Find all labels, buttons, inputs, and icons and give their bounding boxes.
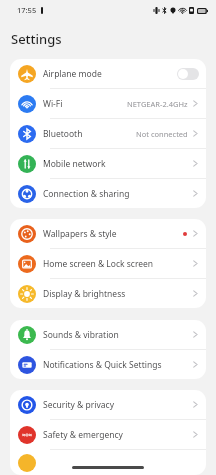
staticText: NETGEAR-2.4GHz — [127, 99, 188, 109]
button[interactable]: Airplane mode — [10, 59, 206, 88]
staticText: Safety & emergency — [43, 429, 123, 441]
staticText: Sounds & vibration — [43, 329, 119, 341]
button[interactable]: Safety & emergency — [10, 420, 206, 449]
staticText: Airplane mode — [43, 68, 102, 80]
staticText: Not connected — [136, 129, 188, 139]
staticText: Bluetooth — [43, 128, 83, 140]
button[interactable]: Sounds & vibration — [10, 320, 206, 349]
button[interactable]: Home screen & Lock screen — [10, 249, 206, 278]
button[interactable]: Wallpapers & style — [10, 219, 206, 248]
staticText: 17:55 — [17, 5, 37, 15]
button[interactable]: Bluetooth — [10, 119, 206, 148]
button[interactable]: Display & brightness — [10, 279, 206, 308]
staticText: Wallpapers & style — [43, 228, 117, 240]
button[interactable]: Mobile network — [10, 149, 206, 178]
button[interactable]: Airplane mode toggle — [177, 68, 199, 80]
button[interactable]: Wi-Fi — [10, 89, 206, 118]
button[interactable]: Connection & sharing — [10, 179, 206, 208]
button[interactable]: Notifications & Quick Settings — [10, 350, 206, 379]
staticText: Security & privacy — [43, 399, 114, 411]
staticText: Notifications & Quick Settings — [43, 359, 162, 371]
staticText: Wi-Fi — [43, 98, 63, 110]
staticText: Connection & sharing — [43, 188, 130, 200]
staticText: Settings — [11, 30, 62, 48]
staticText: Home screen & Lock screen — [43, 258, 154, 270]
staticText: Display & brightness — [43, 288, 126, 300]
button[interactable]: Security & privacy — [10, 390, 206, 419]
button[interactable] — [10, 450, 206, 475]
staticText: Mobile network — [43, 158, 106, 170]
